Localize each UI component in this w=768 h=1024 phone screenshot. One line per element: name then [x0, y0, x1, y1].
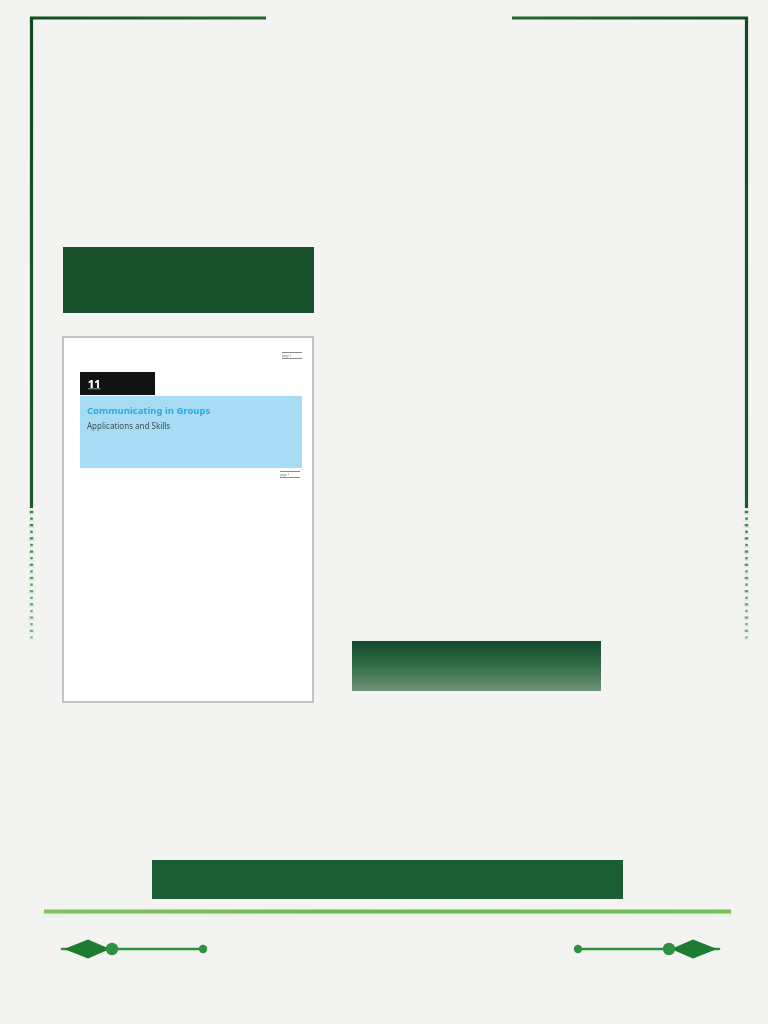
- staticText: page 1: [280, 473, 290, 477]
- button[interactable]: Page marker: [64, 338, 312, 701]
- button[interactable]: Gradient banner: [352, 641, 601, 691]
- button[interactable]: Page marker: [280, 471, 300, 478]
- staticText: Applications and Skills: [87, 420, 171, 431]
- staticText: 11: [88, 376, 101, 391]
- button[interactable]: Page marker: [282, 352, 302, 359]
- staticText: Communicating in Groups: [87, 404, 211, 417]
- staticText: page 1: [282, 354, 292, 358]
